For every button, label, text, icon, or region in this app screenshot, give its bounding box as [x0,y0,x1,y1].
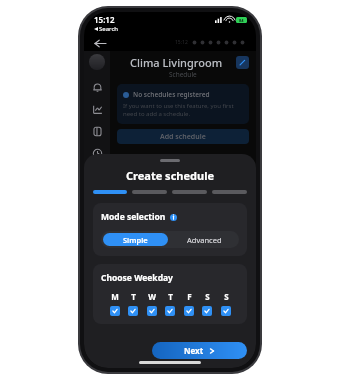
button[interactable]: Advanced [170,231,239,248]
staticText: M [111,291,119,302]
button[interactable]: T [128,291,138,316]
staticText: 84 [239,18,244,23]
staticText: Advanced [187,235,222,245]
staticText: 15:12 [175,39,188,46]
button[interactable]: Edit [236,56,249,69]
staticText: Simple [123,235,148,245]
staticText: Clima Livingroom [130,55,223,70]
button[interactable]: S [202,291,212,316]
staticText: Add schedule [160,132,206,142]
button[interactable]: T [165,291,175,316]
button[interactable]: S [221,291,231,316]
staticText: Choose Weekday [101,272,173,284]
staticText: No schedules registered [133,90,210,99]
button[interactable]: Profile [89,54,105,70]
staticText: F [187,291,192,302]
button[interactable]: Back [92,35,108,51]
staticText: Search [99,25,118,33]
staticText: Mode selection [101,211,166,223]
staticText: Schedule [169,70,197,79]
staticText: S [224,291,229,302]
button[interactable]: Devices [84,120,110,142]
staticText: 15:12 [94,14,115,25]
staticText: T [131,291,136,302]
button[interactable]: Simple [103,233,168,246]
button[interactable]: F [184,291,194,316]
button[interactable]: History [84,142,110,164]
button[interactable]: Statistics [84,98,110,120]
staticText: If you want to use this feature, you fir… [123,102,234,118]
button[interactable]: Info [170,214,177,221]
staticText: Next [184,345,204,356]
button[interactable]: M [110,291,120,316]
staticText: T [168,291,173,302]
button[interactable]: Notifications [84,76,110,98]
button[interactable]: Next [152,342,247,359]
staticText: S [205,291,210,302]
button[interactable]: Add schedule [117,129,249,144]
button[interactable]: W [147,291,157,316]
staticText: Create schedule [126,168,214,183]
staticText: W [148,291,156,302]
